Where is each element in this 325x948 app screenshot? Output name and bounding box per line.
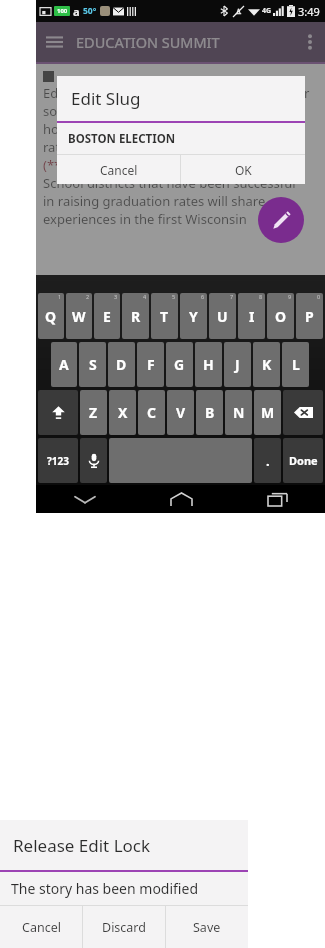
button[interactable]: Q <box>38 293 64 339</box>
button[interactable]: Hide keyboard <box>36 485 133 513</box>
button[interactable]: C <box>138 390 165 435</box>
staticText: 1 <box>58 293 62 300</box>
staticText: 6 <box>201 293 205 300</box>
staticText: 5 <box>172 293 176 300</box>
staticText: 2 <box>86 293 90 300</box>
staticText: Z <box>89 403 98 422</box>
button[interactable]: E <box>94 293 120 339</box>
staticText: K <box>262 355 272 374</box>
button[interactable]: Cancel <box>0 906 82 948</box>
button[interactable]: Voice input <box>80 438 107 483</box>
button[interactable]: Shift <box>38 390 78 435</box>
button[interactable]: Home <box>133 485 229 513</box>
staticText: 4G <box>262 6 272 16</box>
staticText: The story has been modified <box>11 879 199 898</box>
staticText: Q <box>45 307 57 326</box>
staticText: 100 <box>57 7 68 15</box>
button[interactable]: I <box>238 293 265 339</box>
staticText: in raising graduation rates will share <box>43 192 266 210</box>
button[interactable]: Edit <box>258 197 304 243</box>
staticText: Discard <box>102 919 146 936</box>
button[interactable]: Save <box>166 906 248 948</box>
staticText: BOSTON ELECTION <box>68 131 176 147</box>
staticText: P <box>305 307 314 326</box>
button[interactable]: Backspace <box>283 390 323 435</box>
staticText: (**BZU**) <box>43 156 105 174</box>
staticText: 8 <box>259 293 263 300</box>
button[interactable]: F <box>137 342 164 387</box>
button[interactable]: M <box>254 390 281 435</box>
button[interactable]: Y <box>180 293 207 339</box>
staticText: Educators from around the state will gat… <box>43 84 310 102</box>
button[interactable]: J <box>224 342 251 387</box>
staticText: L <box>292 355 300 374</box>
staticText: 3 <box>114 293 118 300</box>
staticText: F <box>147 355 155 374</box>
button[interactable]: X <box>109 390 136 435</box>
staticText: EDUCATION SUMMIT <box>76 32 220 52</box>
staticText: E <box>103 307 111 326</box>
staticText: T <box>160 307 169 326</box>
button[interactable]: V <box>167 390 194 435</box>
button[interactable]: S <box>79 342 106 387</box>
staticText: R <box>131 307 141 326</box>
staticText: Edit Slug <box>71 87 141 110</box>
staticText: a <box>73 4 80 19</box>
button[interactable]: ?123 <box>38 438 78 483</box>
staticText: ?123 <box>47 454 69 468</box>
button[interactable]: OK <box>181 155 305 184</box>
staticText: A <box>59 355 69 374</box>
staticText: B <box>205 403 215 422</box>
staticText: J <box>235 355 240 374</box>
staticText: so they can discuss how to improve <box>43 102 259 120</box>
button[interactable]: B <box>196 390 223 435</box>
button[interactable]: G <box>166 342 193 387</box>
button[interactable]: O <box>267 293 294 339</box>
button[interactable]: T <box>151 293 178 339</box>
staticText: 9 <box>288 293 292 300</box>
staticText: I <box>249 307 255 326</box>
button[interactable]: N <box>225 390 252 435</box>
staticText: Release Edit Lock <box>13 834 151 857</box>
staticText: rates across the board <box>43 138 180 156</box>
staticText: V <box>176 403 186 422</box>
staticText: Y <box>189 307 198 326</box>
button[interactable]: Open navigation drawer <box>36 22 72 62</box>
button[interactable]: R <box>122 293 149 339</box>
button[interactable]: L <box>282 342 309 387</box>
button[interactable]: Z <box>80 390 107 435</box>
staticText: . <box>266 452 270 470</box>
staticText: U <box>217 307 228 326</box>
staticText: School districts that have been successf… <box>43 174 296 192</box>
button[interactable]: Cancel <box>57 155 180 184</box>
button[interactable]: Done <box>283 438 323 483</box>
staticText: experiences in the first Wisconsin <box>43 210 247 228</box>
button[interactable]: Discard <box>83 906 165 948</box>
button[interactable]: . <box>254 438 281 483</box>
staticText: 50° <box>83 5 97 17</box>
staticText: M <box>261 403 275 422</box>
staticText: O <box>275 307 287 326</box>
staticText: 3:49 <box>298 4 320 19</box>
button[interactable]: Recent apps <box>229 485 325 513</box>
staticText: D <box>116 355 127 374</box>
staticText: 0 <box>317 293 321 300</box>
staticText: Cancel <box>100 162 138 178</box>
button[interactable]: More options <box>295 22 325 62</box>
button[interactable]: A <box>51 342 77 387</box>
staticText: Cancel <box>22 919 61 936</box>
button[interactable]: U <box>209 293 236 339</box>
staticText: 7 <box>230 293 234 300</box>
staticText: 4 <box>143 293 147 300</box>
button[interactable]: D <box>108 342 135 387</box>
staticText: S <box>89 355 97 374</box>
button[interactable]: H <box>195 342 222 387</box>
button[interactable]: W <box>66 293 92 339</box>
button[interactable]: P <box>296 293 323 339</box>
button[interactable]: K <box>253 342 280 387</box>
staticText: Save <box>193 919 221 936</box>
staticText: H <box>203 355 214 374</box>
staticText: X <box>118 403 128 422</box>
staticText: N <box>233 403 245 422</box>
